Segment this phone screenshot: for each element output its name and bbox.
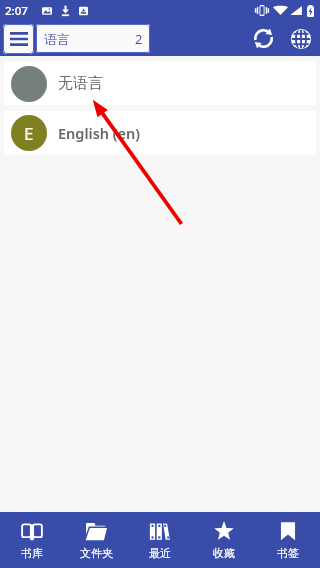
staticText: 文件夹 xyxy=(80,546,113,560)
button[interactable]: Menu xyxy=(3,24,34,54)
button[interactable]: 书库 xyxy=(0,512,64,568)
staticText: 书库 xyxy=(21,546,43,560)
button[interactable]: Language xyxy=(282,21,319,56)
staticText: English (en) xyxy=(58,123,140,143)
staticText: 收藏 xyxy=(213,546,235,560)
button[interactable]: 书签 xyxy=(256,512,320,568)
button[interactable]: E xyxy=(4,111,316,154)
staticText: 语言 xyxy=(44,31,70,47)
button[interactable]: 文件夹 xyxy=(64,512,128,568)
staticText: E xyxy=(24,122,34,145)
staticText: 2 xyxy=(135,30,143,48)
button[interactable]: Refresh xyxy=(245,21,282,56)
staticText: 最近 xyxy=(149,546,171,560)
button[interactable]: 语言 xyxy=(36,24,150,53)
staticText: 书签 xyxy=(277,546,299,560)
button[interactable]: 无语言 xyxy=(4,62,316,105)
button[interactable]: 收藏 xyxy=(192,512,256,568)
staticText: 无语言 xyxy=(58,74,103,93)
staticText: 2:07 xyxy=(5,3,28,19)
button[interactable]: 最近 xyxy=(128,512,192,568)
